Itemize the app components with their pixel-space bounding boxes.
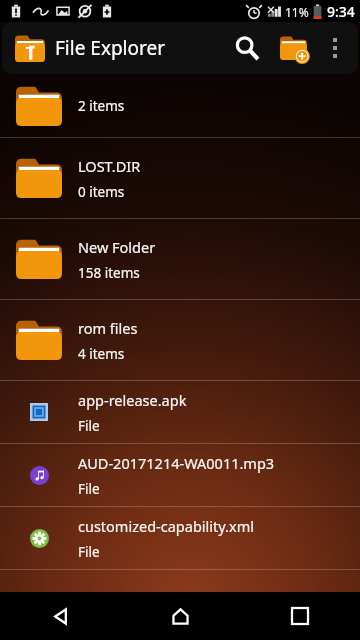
staticText: File	[78, 417, 100, 435]
staticText: File	[78, 543, 100, 561]
button[interactable]: customized-capability.xml	[0, 507, 360, 569]
button[interactable]: Home	[120, 592, 240, 640]
staticText: AUD-20171214-WA0011.mp3	[78, 453, 275, 473]
button[interactable]: Search	[224, 25, 270, 71]
staticText: LOST.DIR	[78, 156, 141, 176]
staticText: app-release.apk	[78, 390, 187, 410]
staticText: New Folder	[78, 237, 156, 257]
button[interactable]: app-release.apk	[0, 381, 360, 443]
staticText: 2 items	[78, 97, 125, 115]
staticText: customized-capability.xml	[78, 516, 254, 536]
staticText: rom files	[78, 318, 138, 338]
staticText: 9:34	[327, 2, 355, 21]
staticText: 158 items	[78, 264, 140, 282]
staticText: 0 items	[78, 183, 125, 201]
staticText: 11%	[285, 4, 309, 20]
button[interactable]: Back	[0, 592, 120, 640]
button[interactable]: 2 items	[0, 74, 360, 137]
button[interactable]: New folder	[270, 25, 316, 71]
button[interactable]: New Folder	[0, 219, 360, 299]
staticText: 4 items	[78, 345, 125, 363]
button[interactable]: AUD-20171214-WA0011.mp3	[0, 444, 360, 506]
button[interactable]: More options	[316, 29, 354, 67]
staticText: File Explorer	[55, 35, 224, 61]
button[interactable]: LOST.DIR	[0, 138, 360, 218]
button[interactable]: Recents	[240, 592, 360, 640]
staticText: File	[78, 480, 100, 498]
button[interactable]: rom files	[0, 300, 360, 380]
